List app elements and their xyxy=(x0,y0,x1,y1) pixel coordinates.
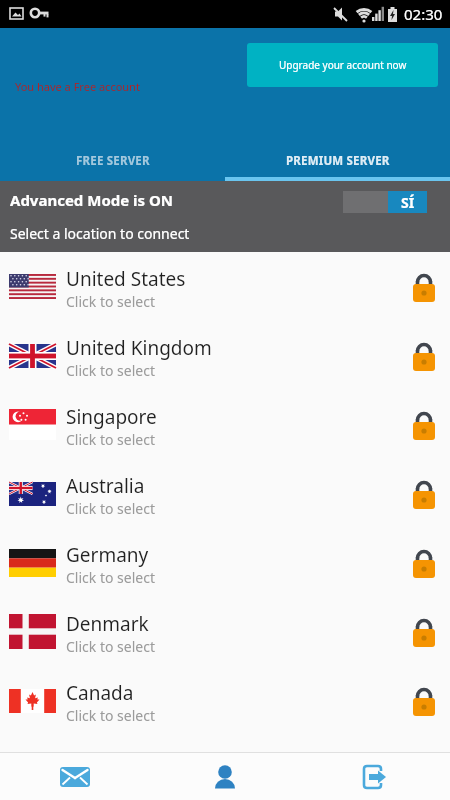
staticText: Click to select xyxy=(66,706,155,725)
button[interactable]: Denmark xyxy=(0,597,450,666)
staticText: Advanced Mode is ON xyxy=(10,190,174,210)
button[interactable]: United States xyxy=(0,252,450,321)
button[interactable]: Canada xyxy=(0,666,450,735)
staticText: Select a location to connect xyxy=(10,224,190,243)
staticText: Click to select xyxy=(66,568,155,587)
staticText: You have a Free account xyxy=(15,79,140,94)
staticText: Canada xyxy=(66,680,134,706)
staticText: Germany xyxy=(66,542,149,568)
button[interactable] xyxy=(300,753,450,800)
staticText: Denmark xyxy=(66,611,149,637)
staticText: SÍ xyxy=(401,193,415,212)
button[interactable]: PREMIUM SERVER xyxy=(225,140,450,181)
button[interactable]: FREE SERVER xyxy=(0,140,225,181)
staticText: FREE SERVER xyxy=(76,153,150,169)
button[interactable]: United Kingdom xyxy=(0,321,450,390)
staticText: Click to select xyxy=(66,292,155,311)
button[interactable]: Australia xyxy=(0,459,450,528)
button[interactable]: Germany xyxy=(0,528,450,597)
staticText: United Kingdom xyxy=(66,335,212,361)
staticText: PREMIUM SERVER xyxy=(286,153,390,169)
button[interactable]: Upgrade your account now xyxy=(247,43,438,87)
staticText: Click to select xyxy=(66,637,155,656)
staticText: Click to select xyxy=(66,499,155,518)
staticText: Singapore xyxy=(66,404,157,430)
button[interactable] xyxy=(150,753,300,800)
staticText: 02:30 xyxy=(404,4,443,24)
staticText: United States xyxy=(66,266,186,292)
staticText: Click to select xyxy=(66,361,155,380)
staticText: Upgrade your account now xyxy=(279,58,407,72)
button[interactable]: Singapore xyxy=(0,390,450,459)
staticText: Australia xyxy=(66,473,145,499)
button[interactable]: SÍ xyxy=(343,191,427,213)
button[interactable] xyxy=(0,753,150,800)
staticText: Click to select xyxy=(66,430,155,449)
